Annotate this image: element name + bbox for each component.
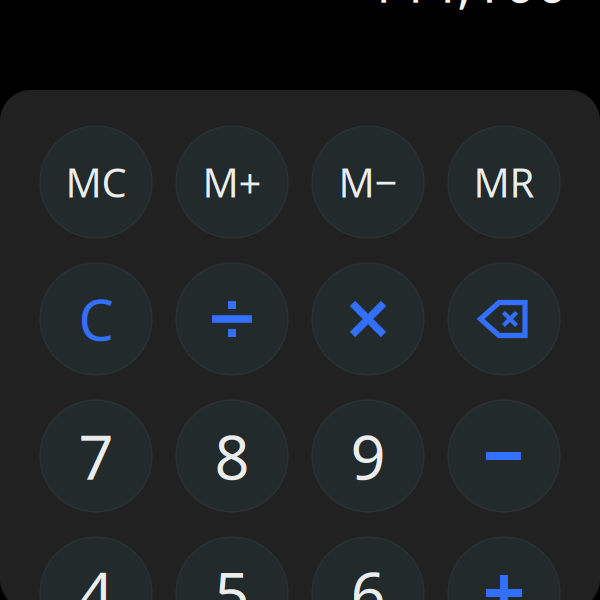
- button[interactable]: 8: [176, 400, 288, 512]
- button[interactable]: Multiply: [312, 263, 424, 375]
- staticText: MR: [473, 155, 534, 208]
- staticText: 7: [78, 415, 113, 497]
- staticText: C: [78, 282, 113, 356]
- staticText: 5: [214, 552, 249, 600]
- button[interactable]: MR: [448, 126, 560, 238]
- button[interactable]: MC: [40, 126, 152, 238]
- button[interactable]: M+: [176, 126, 288, 238]
- staticText: 4: [78, 552, 113, 600]
- staticText: M+: [202, 155, 261, 208]
- staticText: 6: [350, 552, 385, 600]
- button[interactable]: Divide: [176, 263, 288, 375]
- button[interactable]: 7: [40, 400, 152, 512]
- staticText: 9: [350, 415, 385, 497]
- button[interactable]: Plus: [448, 537, 560, 600]
- staticText: M−: [338, 155, 397, 208]
- button[interactable]: 6: [312, 537, 424, 600]
- button[interactable]: 9: [312, 400, 424, 512]
- staticText: MC: [65, 155, 126, 208]
- button[interactable]: Minus: [448, 400, 560, 512]
- button[interactable]: C: [40, 263, 152, 375]
- staticText: 444,100: [361, 0, 568, 18]
- button[interactable]: M−: [312, 126, 424, 238]
- staticText: 8: [214, 415, 249, 497]
- button[interactable]: 4: [40, 537, 152, 600]
- button[interactable]: 5: [176, 537, 288, 600]
- button[interactable]: Delete: [448, 263, 560, 375]
